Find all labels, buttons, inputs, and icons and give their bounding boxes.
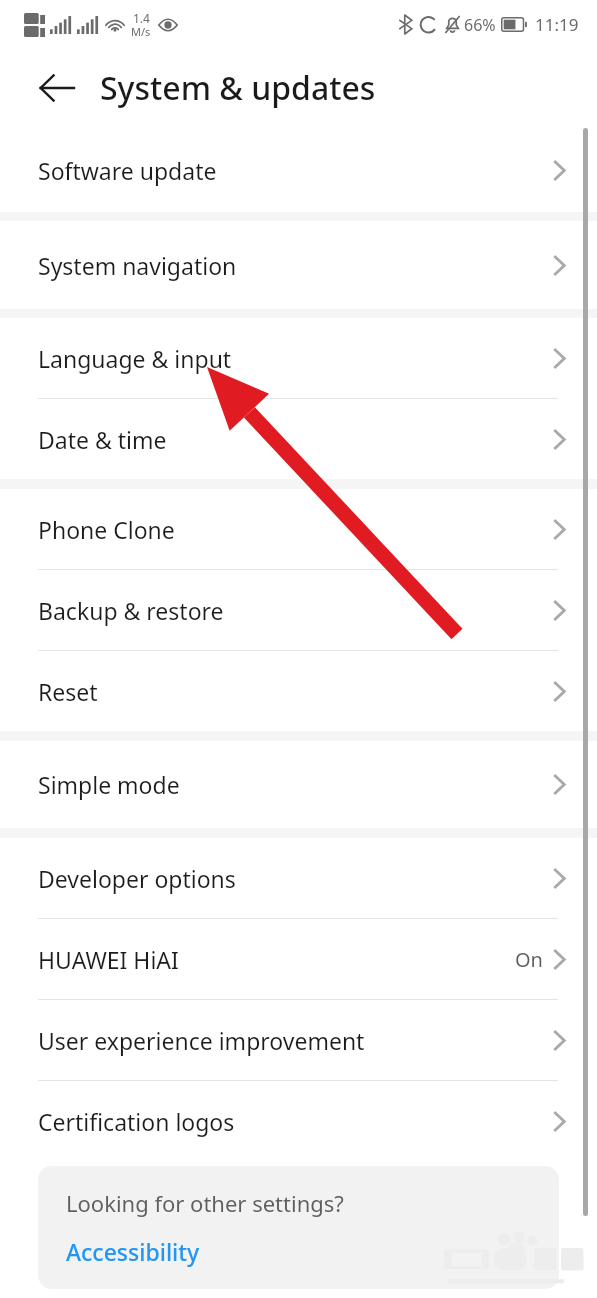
button[interactable]: Back: [26, 57, 88, 119]
staticText: System & updates: [100, 66, 376, 110]
staticText: 1.4: [133, 10, 150, 26]
staticText: Accessibility: [66, 1236, 200, 1267]
staticText: HUAWEI HiAI: [38, 944, 179, 975]
staticText: Looking for other settings?: [66, 1188, 344, 1218]
button[interactable]: Language & input: [0, 318, 597, 398]
staticText: Simple mode: [38, 769, 180, 800]
staticText: 66%: [464, 14, 496, 36]
button[interactable]: Simple mode: [0, 741, 597, 828]
staticText: On: [515, 946, 543, 973]
staticText: Phone Clone: [38, 514, 175, 545]
button[interactable]: HUAWEI HiAI: [0, 919, 597, 999]
staticText: User experience improvement: [38, 1025, 365, 1056]
staticText: Date & time: [38, 424, 167, 455]
button[interactable]: Certification logos: [0, 1081, 597, 1161]
staticText: Reset: [38, 676, 98, 707]
button[interactable]: Date & time: [0, 399, 597, 479]
button[interactable]: System navigation: [0, 221, 597, 309]
staticText: Developer options: [38, 863, 236, 894]
button[interactable]: Phone Clone: [0, 489, 597, 569]
button[interactable]: User experience improvement: [0, 1000, 597, 1080]
staticText: 11:19: [535, 13, 579, 36]
button[interactable]: Looking for other settings?: [38, 1166, 559, 1289]
button[interactable]: Software update: [0, 128, 597, 212]
staticText: M/s: [131, 24, 151, 39]
staticText: System navigation: [38, 250, 237, 281]
staticText: Software update: [38, 155, 217, 186]
staticText: Backup & restore: [38, 595, 224, 626]
staticText: Certification logos: [38, 1106, 235, 1137]
button[interactable]: Reset: [0, 651, 597, 731]
button[interactable]: Backup & restore: [0, 570, 597, 650]
button[interactable]: Developer options: [0, 838, 597, 918]
staticText: Language & input: [38, 343, 232, 374]
